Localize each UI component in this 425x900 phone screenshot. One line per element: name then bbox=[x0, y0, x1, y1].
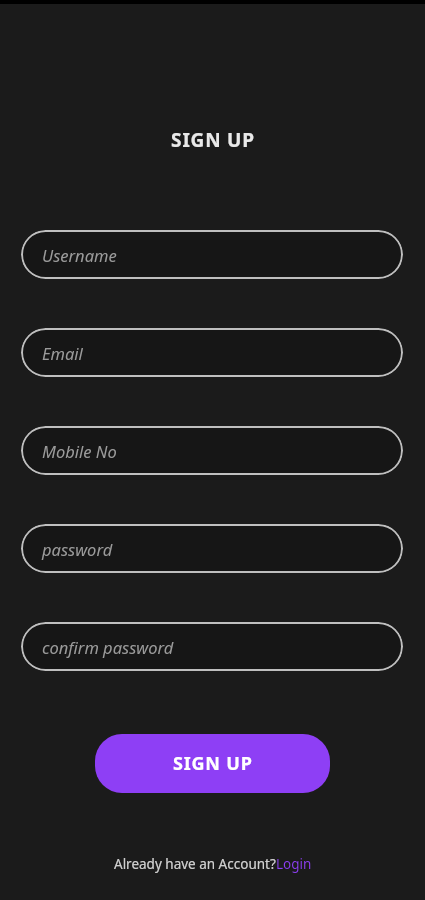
button[interactable]: Username bbox=[21, 230, 403, 279]
staticText: Username bbox=[42, 244, 117, 266]
staticText: Email bbox=[42, 342, 83, 364]
staticText: Login bbox=[276, 855, 312, 873]
staticText: password bbox=[42, 538, 113, 560]
button[interactable]: SIGN UP bbox=[95, 734, 330, 793]
staticText: SIGN UP bbox=[173, 751, 253, 776]
staticText: Already have an Account? bbox=[114, 855, 276, 873]
staticText: SIGN UP bbox=[171, 127, 255, 153]
button[interactable]: Mobile No bbox=[21, 426, 403, 475]
staticText: Mobile No bbox=[42, 440, 117, 462]
button[interactable]: confirm password bbox=[21, 622, 403, 671]
button[interactable]: Login bbox=[276, 855, 312, 873]
button[interactable]: password bbox=[21, 524, 403, 573]
button[interactable]: Email bbox=[21, 328, 403, 377]
staticText: confirm password bbox=[42, 636, 174, 658]
